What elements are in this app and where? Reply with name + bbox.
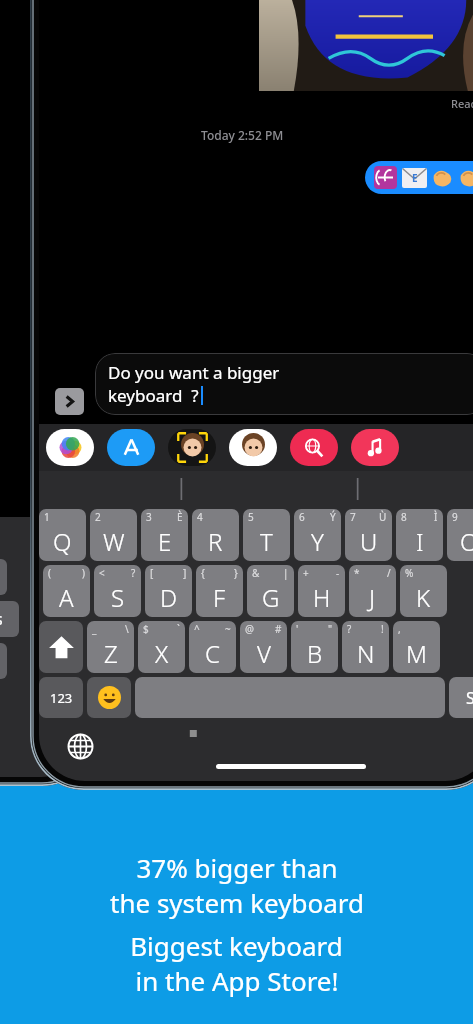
button[interactable]: App <box>351 429 399 466</box>
button[interactable]: @ <box>240 621 287 673</box>
staticText: 7 <box>350 510 356 524</box>
staticText: % <box>405 566 414 580</box>
staticText: $ <box>143 622 149 636</box>
button[interactable]: 7 <box>345 509 392 561</box>
button[interactable]: 2 <box>90 509 137 561</box>
staticText: D <box>160 581 178 614</box>
button[interactable]: 9 <box>447 509 473 561</box>
staticText: ] <box>183 566 187 580</box>
button[interactable]: 4 <box>192 509 239 561</box>
staticText: * <box>354 566 360 580</box>
staticText: Ý <box>330 510 336 524</box>
staticText: @ <box>245 622 254 636</box>
button[interactable]: ^ <box>189 621 236 673</box>
staticText: F <box>213 581 226 614</box>
staticText: s <box>0 608 3 630</box>
button[interactable]: { <box>196 565 243 617</box>
button[interactable]: w <box>0 559 7 595</box>
staticText: H <box>313 581 331 614</box>
staticText: “key <box>49 524 83 547</box>
button[interactable]: App <box>229 429 277 466</box>
staticText: Do you want a bigger <box>108 361 280 384</box>
button[interactable]: 1 <box>39 509 86 561</box>
staticText: [ <box>150 566 154 580</box>
staticText: # <box>275 622 282 636</box>
button[interactable]: < <box>94 565 141 617</box>
button[interactable]: 3 <box>141 509 188 561</box>
button[interactable]: 5 <box>243 509 290 561</box>
staticText: W <box>103 525 125 558</box>
button[interactable]: 6 <box>294 509 341 561</box>
staticText: I <box>416 525 424 558</box>
button[interactable]: App <box>290 429 338 466</box>
staticText: Today 2:52 PM <box>201 127 284 143</box>
staticText: A <box>59 581 74 614</box>
staticText: - <box>336 566 340 580</box>
staticText: , <box>398 622 401 636</box>
staticText: N <box>357 637 375 670</box>
button[interactable]: ( <box>43 565 90 617</box>
button[interactable]: App <box>46 429 94 466</box>
staticText: X <box>155 637 169 670</box>
staticText: 1 <box>44 510 50 524</box>
staticText: 2 <box>95 510 101 524</box>
button[interactable]: _ <box>87 621 134 673</box>
button[interactable]: App <box>107 429 155 466</box>
staticText: _ <box>92 622 97 636</box>
button[interactable]: 123 <box>39 677 83 718</box>
staticText: E <box>158 525 172 558</box>
button[interactable]: E <box>374 166 473 189</box>
staticText: ? <box>347 622 352 636</box>
staticText: ` <box>177 622 180 636</box>
button[interactable]: App <box>168 429 216 466</box>
button[interactable]: Space <box>135 677 445 718</box>
staticText: ) <box>82 566 85 580</box>
staticText: K <box>416 581 431 614</box>
button[interactable]: * <box>349 565 396 617</box>
button[interactable]: Switch keyboard <box>67 733 94 760</box>
button[interactable]: , <box>393 621 440 673</box>
staticText: ? <box>131 566 136 580</box>
button[interactable]: [ <box>145 565 192 617</box>
button[interactable]: ? <box>342 621 389 673</box>
staticText: \ <box>125 622 129 636</box>
staticText: È <box>177 510 183 524</box>
button[interactable]: s <box>0 601 19 637</box>
staticText: M <box>406 637 427 670</box>
staticText: in the App Store! <box>135 963 339 998</box>
button[interactable]: % <box>400 565 447 617</box>
staticText: ' <box>296 622 299 636</box>
staticText: 123 <box>50 689 73 707</box>
staticText: S <box>111 581 125 614</box>
button[interactable]: ' <box>291 621 338 673</box>
staticText: 9 <box>452 510 458 524</box>
staticText: Z <box>104 637 118 670</box>
button[interactable]: Expand keyboard <box>55 388 84 415</box>
staticText: 6 <box>299 510 305 524</box>
button[interactable]: 8 <box>396 509 443 561</box>
staticText: C <box>205 637 220 670</box>
button[interactable]: Do you want a bigger <box>108 361 473 407</box>
staticText: Y <box>311 525 324 558</box>
button[interactable]: Emoji <box>87 677 131 718</box>
staticText: | <box>283 566 289 580</box>
staticText: { <box>201 566 205 580</box>
staticText: the system keyboard <box>110 885 364 920</box>
button[interactable]: & <box>247 565 294 617</box>
staticText: Ì <box>434 510 438 524</box>
staticText: 4 <box>197 510 203 524</box>
staticText: ^ <box>194 622 200 636</box>
staticText: Ù <box>379 510 387 524</box>
button[interactable]: z <box>0 643 7 679</box>
button[interactable]: $ <box>138 621 185 673</box>
button[interactable]: Shift <box>39 621 83 673</box>
staticText: S <box>466 687 473 709</box>
staticText: V <box>257 637 271 670</box>
staticText: Biggest keyboard <box>130 928 343 963</box>
button[interactable]: S <box>449 677 473 718</box>
staticText: " <box>328 622 333 636</box>
staticText: keyboard ? <box>108 384 199 407</box>
staticText: Q <box>53 525 72 558</box>
staticText: U <box>360 525 378 558</box>
button[interactable]: + <box>298 565 345 617</box>
